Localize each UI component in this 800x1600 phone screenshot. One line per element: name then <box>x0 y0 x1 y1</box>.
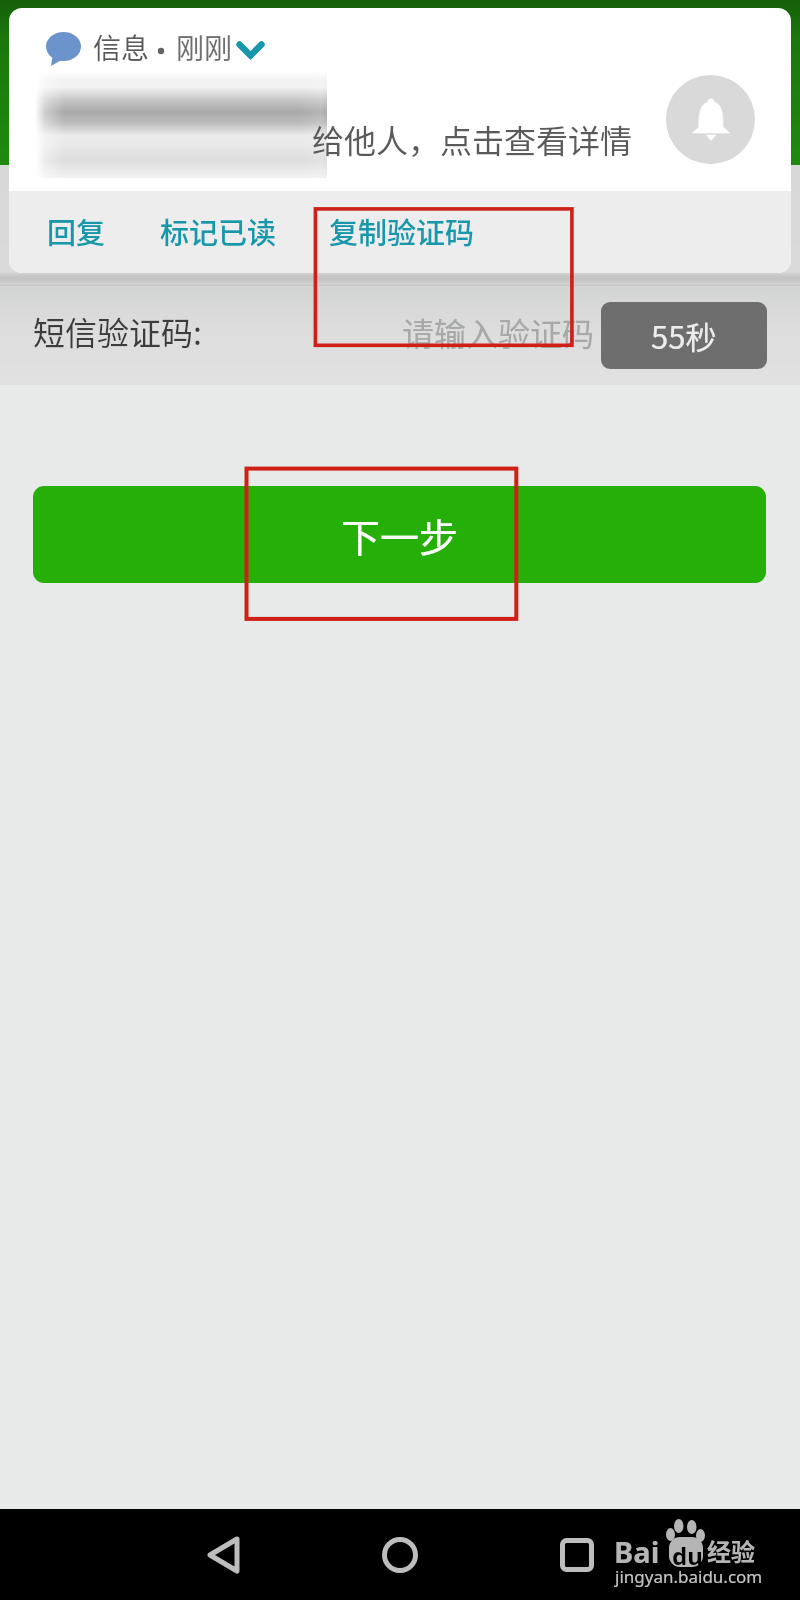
staticText: 55秒 <box>651 313 717 358</box>
staticText: 刚刚 <box>176 27 233 68</box>
button[interactable]: Home <box>355 1509 445 1600</box>
staticText: 信息 <box>93 27 150 68</box>
staticText: 经验 <box>707 1533 755 1568</box>
staticText: 给他人，点击查看详情 <box>312 116 633 162</box>
button[interactable]: 复制验证码 <box>321 204 483 258</box>
staticText: 下一步 <box>341 507 459 563</box>
button[interactable]: 下一步 <box>33 486 766 583</box>
staticText: du <box>672 1539 703 1572</box>
staticText: 标记已读 <box>160 210 277 252</box>
button[interactable]: 回复 <box>39 204 114 258</box>
staticText: 短信验证码: <box>33 308 202 354</box>
staticText: jingyan.baidu.com <box>615 1565 763 1588</box>
button[interactable]: Notification settings <box>666 75 755 164</box>
button[interactable]: 55秒 <box>601 302 767 369</box>
staticText: 请输入验证码 <box>402 309 595 355</box>
button[interactable]: Recent apps <box>532 1509 622 1600</box>
staticText: Bai <box>614 1532 660 1571</box>
button[interactable]: 标记已读 <box>152 204 285 258</box>
button[interactable]: Back <box>178 1509 268 1600</box>
staticText: 复制验证码 <box>329 210 475 252</box>
staticText: 回复 <box>47 210 106 252</box>
